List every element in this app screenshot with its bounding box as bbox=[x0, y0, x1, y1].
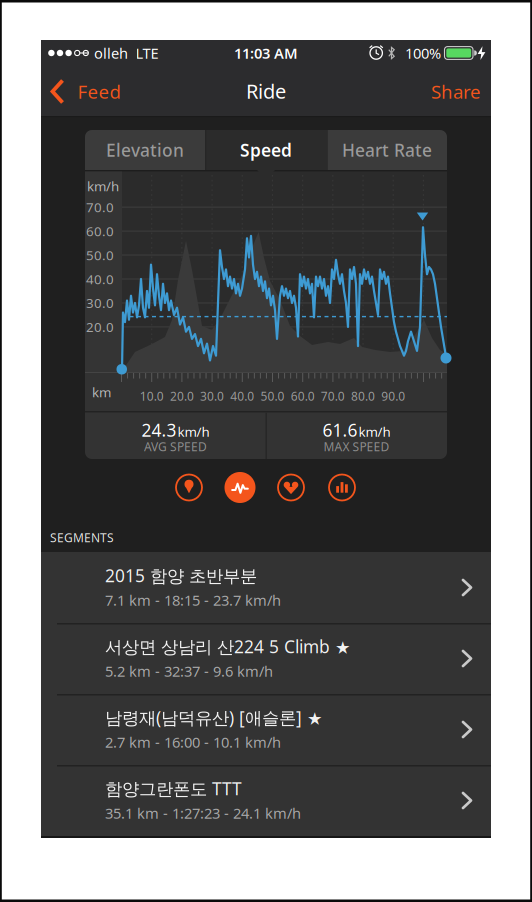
button[interactable]: Elevation bbox=[85, 130, 205, 170]
button[interactable]: Feed bbox=[49, 66, 137, 117]
staticText: Speed bbox=[240, 138, 292, 161]
staticText: 70.0 bbox=[86, 198, 114, 216]
button[interactable]: Heart Rate bbox=[327, 130, 447, 170]
button[interactable]: Speed bbox=[206, 130, 326, 170]
button[interactable]: 서상면 상남리 산224 5 Climb ★ bbox=[41, 623, 491, 694]
button[interactable]: 함양그란폰도 TTT bbox=[41, 765, 491, 836]
staticText: 100% bbox=[405, 43, 441, 63]
staticText: 50.0 bbox=[260, 388, 284, 404]
button[interactable]: Statistics bbox=[326, 471, 358, 503]
staticText: 60.0 bbox=[86, 222, 114, 240]
button[interactable]: Map bbox=[173, 471, 205, 503]
staticText: Share bbox=[431, 79, 481, 104]
staticText: Heart Rate bbox=[342, 138, 432, 161]
staticText: 90.0 bbox=[381, 388, 405, 404]
staticText: 서상면 상남리 산224 5 Climb ★ bbox=[105, 635, 351, 658]
staticText: LTE bbox=[135, 43, 158, 63]
staticText: 30.0 bbox=[86, 294, 114, 312]
staticText: 40.0 bbox=[86, 270, 114, 288]
staticText: 7.1 km - 18:15 - 23.7 km/h bbox=[105, 590, 281, 610]
staticText: SEGMENTS bbox=[50, 529, 114, 545]
staticText: 24.3 bbox=[141, 418, 176, 441]
button[interactable]: Share bbox=[391, 66, 481, 117]
staticText: 11:03 AM bbox=[234, 43, 298, 63]
button[interactable]: Analysis bbox=[224, 471, 256, 503]
staticText: 함양그란폰도 TTT bbox=[105, 777, 242, 800]
staticText: 20.0 bbox=[170, 388, 194, 404]
staticText: 61.6 bbox=[322, 418, 357, 441]
staticText: 50.0 bbox=[86, 246, 114, 264]
staticText: km bbox=[92, 383, 111, 401]
staticText: 5.2 km - 32:37 - 9.6 km/h bbox=[105, 661, 273, 681]
staticText: 80.0 bbox=[351, 388, 375, 404]
staticText: km/h bbox=[87, 177, 119, 195]
button[interactable]: 2015 함양 초반부분 bbox=[41, 552, 491, 623]
staticText: km/h bbox=[358, 423, 390, 440]
staticText: 40.0 bbox=[230, 388, 254, 404]
staticText: Elevation bbox=[106, 138, 184, 161]
staticText: 10.0 bbox=[140, 388, 164, 404]
staticText: 35.1 km - 1:27:23 - 24.1 km/h bbox=[105, 803, 301, 823]
staticText: 남령재(남덕유산) [애슬론] ★ bbox=[105, 706, 323, 729]
staticText: 30.0 bbox=[200, 388, 224, 404]
staticText: Ride bbox=[246, 78, 286, 104]
staticText: 20.0 bbox=[86, 318, 114, 336]
button[interactable]: Heart rate bbox=[275, 471, 307, 503]
staticText: MAX SPEED bbox=[323, 438, 389, 454]
staticText: 70.0 bbox=[321, 388, 345, 404]
button[interactable]: 남령재(남덕유산) [애슬론] ★ bbox=[41, 694, 491, 765]
staticText: 2.7 km - 16:00 - 10.1 km/h bbox=[105, 732, 281, 752]
staticText: olleh bbox=[94, 43, 128, 63]
staticText: 2015 함양 초반부분 bbox=[105, 564, 257, 587]
staticText: 60.0 bbox=[291, 388, 315, 404]
staticText: Feed bbox=[77, 79, 120, 104]
staticText: km/h bbox=[177, 423, 209, 440]
staticText: AVG SPEED bbox=[144, 438, 207, 454]
